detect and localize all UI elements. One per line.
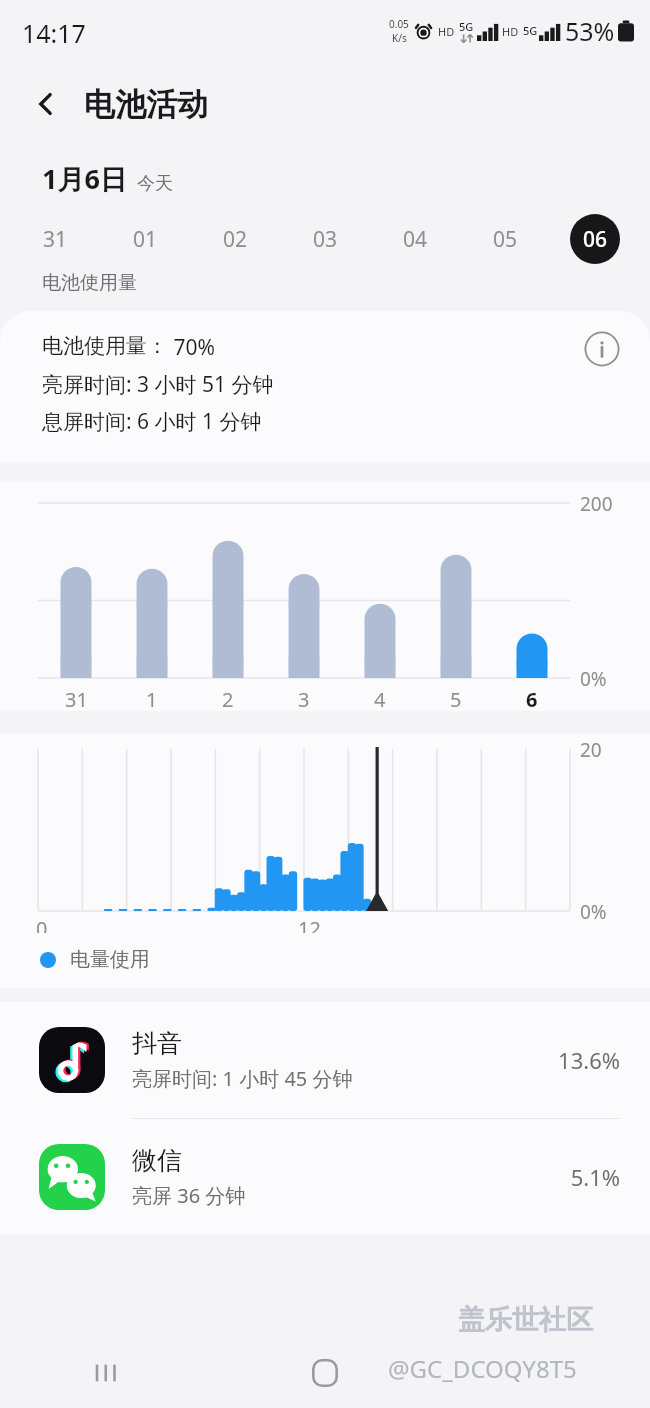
button[interactable]: 主屏幕 xyxy=(216,1338,433,1408)
staticText: 12 xyxy=(298,915,321,942)
staticText: 电池使用量： xyxy=(42,333,168,359)
staticText: 02 xyxy=(223,225,248,254)
staticText: 06 xyxy=(583,225,608,254)
staticText: 0.05 xyxy=(389,17,409,31)
staticText: 盖乐世社区 xyxy=(458,1303,593,1337)
staticText: K/s xyxy=(392,31,407,45)
button[interactable]: 05 xyxy=(480,214,530,264)
staticText: 31 xyxy=(65,686,88,713)
staticText: 03 xyxy=(313,225,338,254)
staticText: 5G xyxy=(523,23,538,38)
staticText: 6 xyxy=(526,686,538,713)
staticText: HD xyxy=(502,24,519,39)
button[interactable]: 03 xyxy=(300,214,350,264)
staticText: 20 xyxy=(580,737,602,763)
staticText: 5 xyxy=(450,686,462,713)
staticText: 05 xyxy=(493,225,518,254)
staticText: 70% xyxy=(168,333,215,362)
staticText: 200 xyxy=(580,491,613,517)
staticText: 微信 xyxy=(132,1145,182,1176)
button[interactable]: 02 xyxy=(210,214,260,264)
staticText: 电池使用量 xyxy=(42,271,137,295)
staticText: 5.1% xyxy=(570,1162,620,1192)
button[interactable]: 01 xyxy=(120,214,170,264)
staticText: 今天 xyxy=(137,172,173,195)
staticText: 2 xyxy=(222,686,234,713)
staticText: 电量使用 xyxy=(70,947,150,972)
staticText: 0 xyxy=(36,915,48,942)
staticText: 1月6日 xyxy=(42,160,127,197)
staticText: 04 xyxy=(403,225,428,254)
staticText: 亮屏时间: 1 小时 45 分钟 xyxy=(132,1065,353,1092)
button[interactable]: 最近任务 xyxy=(0,1338,216,1408)
staticText: 电池活动 xyxy=(84,85,208,124)
staticText: 31 xyxy=(43,225,68,254)
staticText: 4 xyxy=(374,686,386,713)
staticText: 亮屏 36 分钟 xyxy=(132,1182,246,1209)
button[interactable]: 抖音 xyxy=(0,1002,650,1118)
button[interactable]: 31 xyxy=(30,214,80,264)
button[interactable]: 返回 xyxy=(433,1338,650,1408)
staticText: 01 xyxy=(133,225,158,254)
staticText: HD xyxy=(438,24,455,39)
staticText: 5G xyxy=(459,19,474,34)
button[interactable]: 微信 xyxy=(0,1119,650,1235)
staticText: 0% xyxy=(580,666,607,692)
button[interactable]: 返回 xyxy=(22,80,70,128)
button[interactable]: 04 xyxy=(390,214,440,264)
button[interactable]: 信息 xyxy=(580,327,624,371)
staticText: 14:17 xyxy=(22,16,86,50)
staticText: 3 xyxy=(298,686,310,713)
staticText: 53% xyxy=(565,14,615,48)
staticText: @GC_DCOQY8T5 xyxy=(388,1352,577,1385)
staticText: 0% xyxy=(580,899,607,925)
staticText: 息屏时间: 6 小时 1 分钟 xyxy=(42,407,262,436)
button[interactable]: 06 xyxy=(570,214,620,264)
staticText: 亮屏时间: 3 小时 51 分钟 xyxy=(42,370,274,399)
staticText: 1 xyxy=(146,686,158,713)
staticText: 抖音 xyxy=(132,1028,182,1059)
staticText: 13.6% xyxy=(558,1045,620,1075)
